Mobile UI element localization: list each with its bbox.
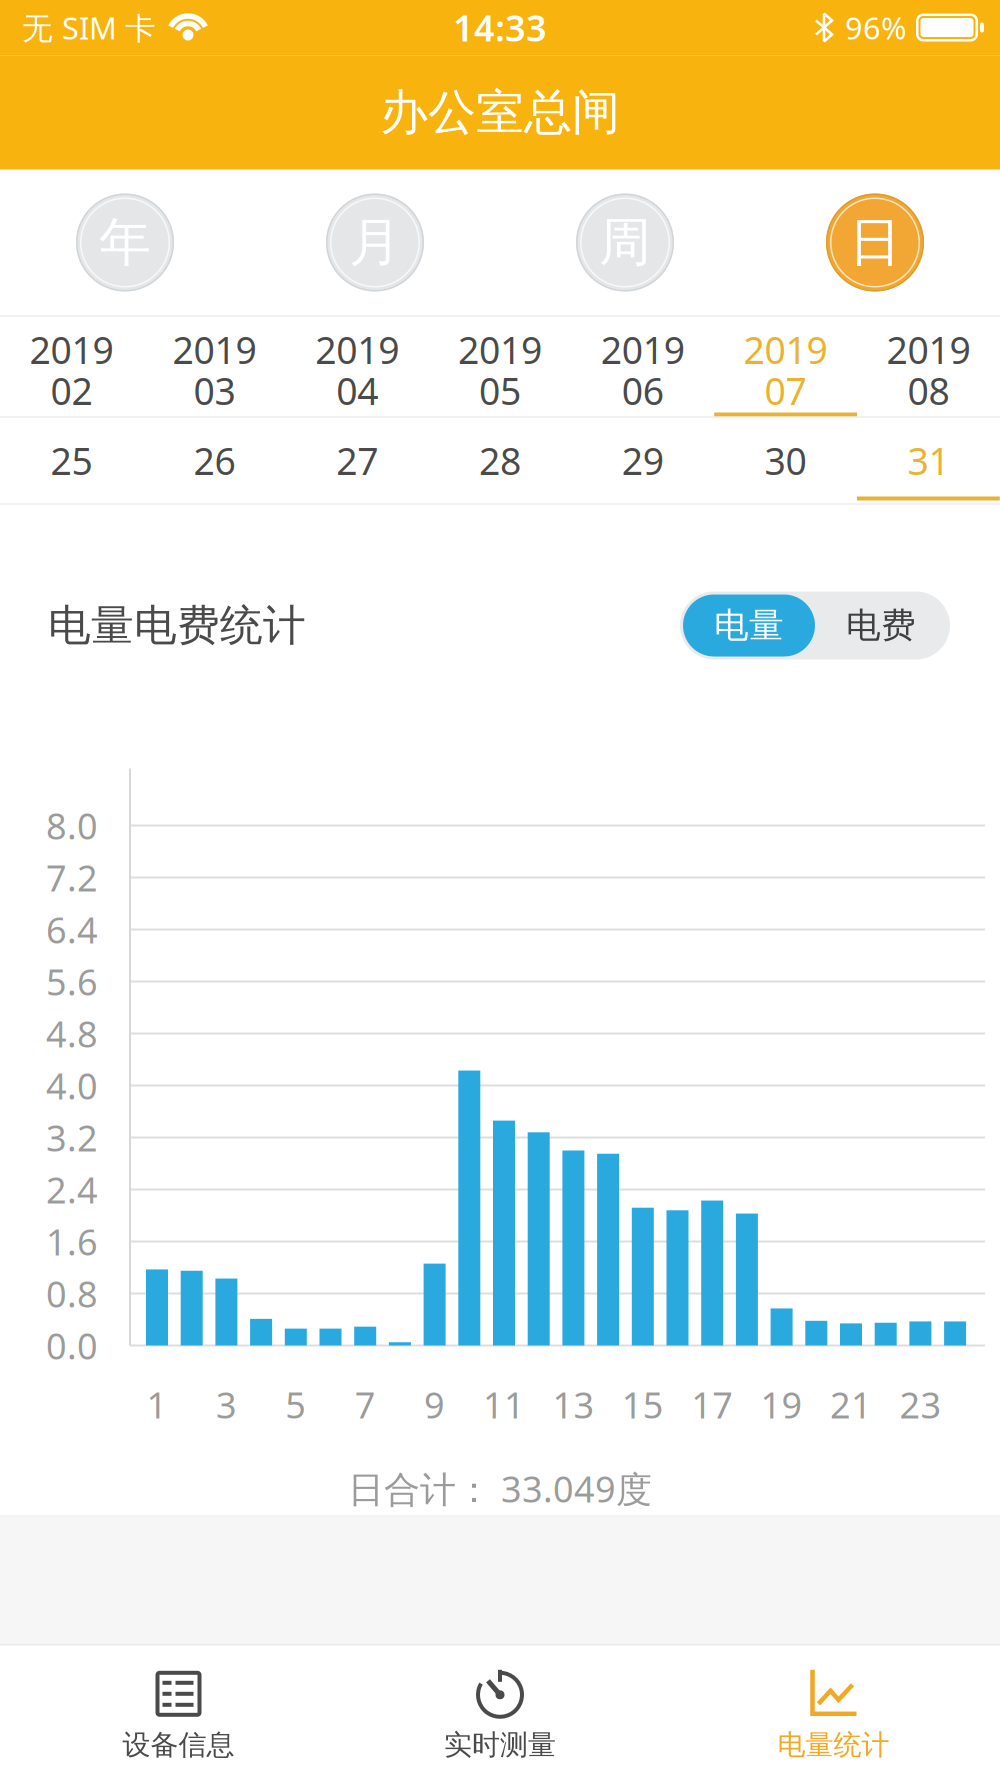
staticText: 电量统计 bbox=[777, 1728, 889, 1762]
button[interactable]: 电量统计 bbox=[667, 1645, 1000, 1778]
staticText: 06 bbox=[622, 366, 664, 415]
staticText: 电费 bbox=[846, 604, 916, 647]
button[interactable]: 26 bbox=[143, 417, 286, 503]
staticText: 02 bbox=[51, 366, 93, 415]
staticText: 03 bbox=[193, 366, 235, 415]
button[interactable]: 电量 bbox=[683, 594, 815, 656]
button[interactable]: 实时测量 bbox=[333, 1645, 667, 1778]
button[interactable]: 2019 bbox=[143, 316, 286, 416]
staticText: 2019 bbox=[315, 325, 399, 374]
staticText: 2.4 bbox=[46, 1166, 98, 1213]
staticText: 年 bbox=[99, 211, 151, 274]
staticText: 2019 bbox=[744, 325, 828, 374]
staticText: 21 bbox=[830, 1381, 872, 1428]
button[interactable]: 月 bbox=[250, 169, 500, 315]
staticText: 5.6 bbox=[46, 958, 98, 1005]
staticText: 08 bbox=[907, 366, 949, 415]
staticText: 96% bbox=[845, 7, 906, 48]
staticText: 14:33 bbox=[453, 4, 547, 51]
staticText: 28 bbox=[479, 436, 521, 485]
button[interactable]: 29 bbox=[571, 417, 714, 503]
staticText: 日合计： 33.049度 bbox=[348, 1465, 652, 1512]
staticText: 无 SIM 卡 bbox=[22, 7, 156, 48]
button[interactable]: 2019 bbox=[714, 316, 857, 416]
staticText: 26 bbox=[193, 436, 235, 485]
staticText: 31 bbox=[907, 436, 949, 485]
staticText: 5 bbox=[285, 1381, 306, 1428]
staticText: 17 bbox=[691, 1381, 733, 1428]
button[interactable]: 周 bbox=[500, 169, 750, 315]
button[interactable]: 电费 bbox=[815, 594, 947, 656]
staticText: 13 bbox=[552, 1381, 594, 1428]
staticText: 2019 bbox=[886, 325, 970, 374]
staticText: 7 bbox=[355, 1381, 376, 1428]
staticText: 23 bbox=[899, 1381, 941, 1428]
button[interactable]: 31 bbox=[857, 417, 1000, 503]
staticText: 实时测量 bbox=[444, 1728, 556, 1762]
staticText: 4.8 bbox=[46, 1010, 98, 1057]
staticText: 1.6 bbox=[46, 1218, 98, 1265]
staticText: 3.2 bbox=[46, 1114, 98, 1161]
staticText: 05 bbox=[479, 366, 521, 415]
staticText: 9 bbox=[424, 1381, 445, 1428]
staticText: 25 bbox=[51, 436, 93, 485]
staticText: 设备信息 bbox=[122, 1728, 234, 1762]
staticText: 07 bbox=[765, 366, 807, 415]
staticText: 电量 bbox=[714, 604, 784, 647]
staticText: 19 bbox=[761, 1381, 803, 1428]
staticText: 办公室总闸 bbox=[380, 83, 620, 142]
staticText: 1 bbox=[146, 1381, 167, 1428]
staticText: 月 bbox=[349, 211, 401, 274]
staticText: 29 bbox=[622, 436, 664, 485]
button[interactable]: 27 bbox=[286, 417, 429, 503]
button[interactable]: 2019 bbox=[0, 316, 143, 416]
staticText: 2019 bbox=[601, 325, 685, 374]
button[interactable]: 2019 bbox=[429, 316, 571, 416]
staticText: 日 bbox=[849, 211, 901, 274]
staticText: 04 bbox=[336, 366, 378, 415]
staticText: 2019 bbox=[458, 325, 542, 374]
button[interactable]: 2019 bbox=[857, 316, 1000, 416]
button[interactable]: 设备信息 bbox=[0, 1645, 333, 1778]
staticText: 3 bbox=[216, 1381, 237, 1428]
staticText: 27 bbox=[336, 436, 378, 485]
staticText: 15 bbox=[622, 1381, 664, 1428]
staticText: 0.0 bbox=[46, 1322, 98, 1369]
staticText: 6.4 bbox=[46, 906, 98, 953]
button[interactable]: 日 bbox=[750, 169, 1000, 315]
button[interactable]: 2019 bbox=[571, 316, 714, 416]
button[interactable]: 28 bbox=[429, 417, 571, 503]
staticText: 0.8 bbox=[46, 1270, 98, 1317]
staticText: 30 bbox=[765, 436, 807, 485]
staticText: 电量电费统计 bbox=[48, 599, 306, 652]
staticText: 8.0 bbox=[46, 802, 98, 849]
staticText: 2019 bbox=[30, 325, 114, 374]
staticText: 7.2 bbox=[46, 854, 98, 901]
staticText: 2019 bbox=[172, 325, 256, 374]
staticText: 4.0 bbox=[46, 1062, 98, 1109]
staticText: 11 bbox=[483, 1381, 525, 1428]
button[interactable]: 2019 bbox=[286, 316, 429, 416]
button[interactable]: 25 bbox=[0, 417, 143, 503]
staticText: 周 bbox=[599, 211, 651, 274]
button[interactable]: 30 bbox=[714, 417, 857, 503]
button[interactable]: 年 bbox=[0, 169, 250, 315]
